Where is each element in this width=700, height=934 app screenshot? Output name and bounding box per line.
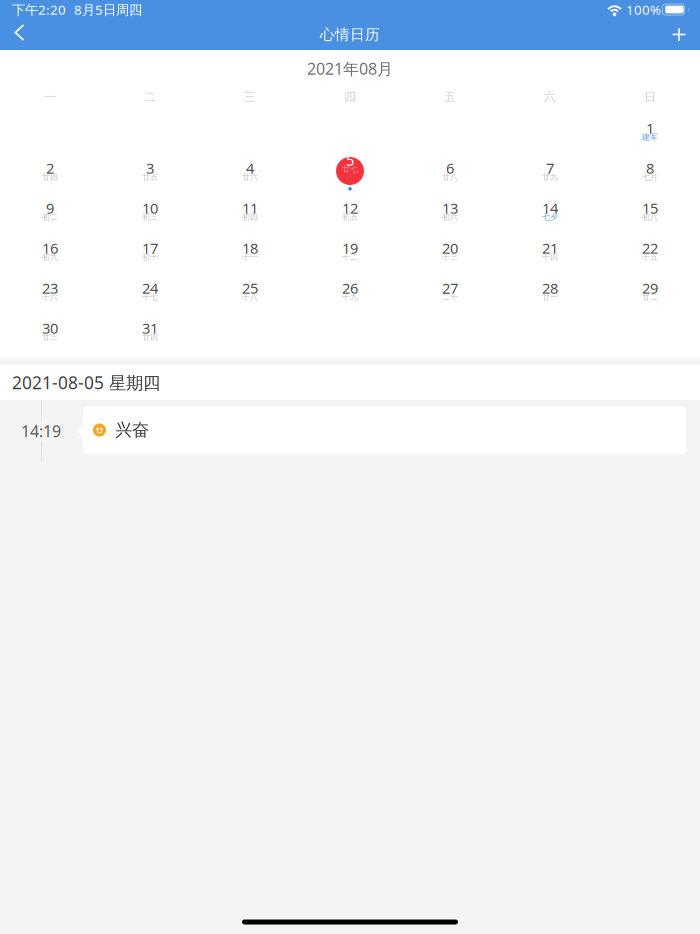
button[interactable]: 3 [100,147,200,187]
staticText: 日 [644,90,656,104]
staticText: 7 [546,158,554,178]
button[interactable]: 兴奋 [83,406,686,454]
staticText: 26 [342,278,358,298]
button[interactable]: 11 [200,187,300,227]
staticText: 4 [246,158,254,178]
staticText: 七月 [642,172,658,182]
staticText: 初三 [142,212,158,222]
button[interactable]: 21 [500,227,600,267]
staticText: 廿五 [142,172,158,182]
staticText: 3 [146,158,154,178]
button[interactable]: 6 [400,147,500,187]
button[interactable]: 5 [300,147,400,187]
staticText: 19 [342,238,358,258]
staticText: 21 [542,238,558,258]
button[interactable]: 24 [100,267,200,307]
staticText: 16 [42,238,58,258]
staticText: 兴奋 [115,419,149,441]
staticText: 二十 [442,292,458,302]
staticText: 初二 [42,212,58,222]
button[interactable]: 19 [300,227,400,267]
staticText: 廿九 [542,172,558,182]
staticText: 廿四 [42,172,58,182]
staticText: 五 [444,90,456,104]
staticText: 初八 [642,212,658,222]
staticText: 6 [446,158,454,178]
button[interactable]: 17 [100,227,200,267]
staticText: 廿四 [142,332,158,342]
staticText: 廿二 [642,292,658,302]
staticText: 十八 [242,292,258,302]
staticText: 8月5日周四 [74,1,142,18]
staticText: 17 [142,238,158,258]
staticText: 23 [42,278,58,298]
button[interactable]: 4 [200,147,300,187]
staticText: 14:19 [21,420,61,442]
staticText: 七夕 [542,212,558,222]
button[interactable]: 22 [600,227,700,267]
staticText: 初四 [242,212,258,222]
staticText: 10 [142,198,158,218]
button[interactable]: 20 [400,227,500,267]
button[interactable]: 8 [600,147,700,187]
staticText: 29 [642,278,658,298]
button[interactable]: 28 [500,267,600,307]
staticText: 廿八 [442,172,458,182]
button[interactable]: 27 [400,267,500,307]
staticText: 十四 [542,252,558,262]
button[interactable]: 25 [200,267,300,307]
button[interactable]: 10 [100,187,200,227]
button[interactable]: Back [0,19,42,50]
staticText: 下午2:20 [12,1,66,18]
staticText: 廿七 [342,164,358,174]
staticText: 13 [442,198,458,218]
button[interactable]: 14 [500,187,600,227]
staticText: 9 [46,198,54,218]
button[interactable]: 18 [200,227,300,267]
staticText: 20 [442,238,458,258]
staticText: 十一 [242,252,258,262]
button[interactable]: 31 [100,307,200,347]
button[interactable]: 12 [300,187,400,227]
staticText: 1 [646,118,654,138]
button[interactable]: 23 [0,267,100,307]
staticText: 15 [642,198,658,218]
button[interactable]: 7 [500,147,600,187]
staticText: 十二 [342,252,358,262]
button[interactable]: 13 [400,187,500,227]
staticText: 廿三 [42,332,58,342]
staticText: 初九 [42,252,58,262]
staticText: 心情日历 [320,25,380,43]
staticText: 27 [442,278,458,298]
button[interactable]: Add [658,19,700,50]
staticText: 100% [626,1,661,18]
staticText: 25 [242,278,258,298]
button[interactable]: 9 [0,187,100,227]
staticText: 8 [646,158,654,178]
staticText: 十三 [442,252,458,262]
staticText: 22 [642,238,658,258]
staticText: 24 [142,278,158,298]
staticText: 30 [42,318,58,338]
staticText: 十九 [342,292,358,302]
staticText: 2021年08月 [307,58,393,79]
staticText: 初六 [442,212,458,222]
button[interactable]: 29 [600,267,700,307]
staticText: 2 [46,158,54,178]
button[interactable]: 2 [0,147,100,187]
button[interactable]: 16 [0,227,100,267]
staticText: 十六 [42,292,58,302]
button[interactable]: 30 [0,307,100,347]
button[interactable]: 1 [600,107,700,147]
staticText: 18 [242,238,258,258]
staticText: 十七 [142,292,158,302]
button[interactable]: 15 [600,187,700,227]
staticText: 廿六 [242,172,258,182]
staticText: 28 [542,278,558,298]
staticText: 31 [142,318,158,338]
staticText: 一 [44,90,56,104]
staticText: 六 [544,90,556,104]
staticText: 四 [344,90,356,104]
staticText: 三 [244,90,256,104]
button[interactable]: 26 [300,267,400,307]
